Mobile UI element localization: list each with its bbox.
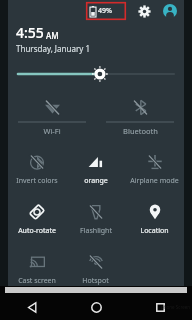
staticText: orange xyxy=(84,176,108,186)
button[interactable]: Auto-rotate xyxy=(8,194,66,244)
button[interactable]: Bluetooth xyxy=(96,92,184,138)
staticText: Thursday, January 1 xyxy=(16,43,90,54)
button[interactable]: Wi-Fi xyxy=(8,92,96,138)
staticText: Auto-rotate xyxy=(18,226,56,236)
button[interactable]: Invert colors xyxy=(8,144,66,194)
button[interactable]: Home xyxy=(64,294,128,320)
button[interactable]: Cast screen xyxy=(8,244,66,286)
staticText: Invert colors xyxy=(16,176,58,186)
button[interactable]: orange xyxy=(66,144,125,194)
staticText: Flashlight xyxy=(80,226,112,236)
staticText: Cast screen xyxy=(18,276,56,286)
button[interactable]: Flashlight xyxy=(66,194,125,244)
staticText: Wi-Fi xyxy=(43,126,61,136)
button[interactable]: Back xyxy=(0,294,64,320)
staticText: 49% xyxy=(98,6,112,16)
button[interactable]: Battery 49 percent xyxy=(86,2,126,20)
staticText: phone Screen xyxy=(161,304,191,310)
button[interactable]: Recent apps xyxy=(128,294,192,320)
button[interactable]: Brightness xyxy=(8,60,184,88)
button[interactable]: Airplane mode xyxy=(125,144,184,194)
staticText: Airplane mode xyxy=(130,176,179,186)
button[interactable]: Location xyxy=(125,194,184,244)
staticText: Location xyxy=(140,226,169,236)
staticText: 4:55 xyxy=(16,23,44,42)
button[interactable]: Hotspot xyxy=(66,244,125,286)
button[interactable]: User account xyxy=(160,1,180,21)
button[interactable]: Settings xyxy=(134,1,154,21)
staticText: AM xyxy=(46,30,59,41)
staticText: Hotspot xyxy=(82,276,109,286)
staticText: Bluetooth xyxy=(123,126,158,136)
